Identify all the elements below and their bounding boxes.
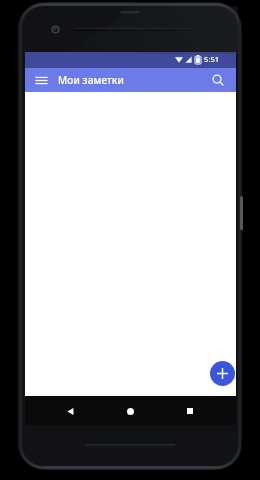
button[interactable]: Add note (210, 361, 235, 386)
button[interactable]: Search (208, 70, 228, 90)
button[interactable]: Home (122, 403, 138, 419)
button[interactable]: Back (62, 403, 78, 419)
button[interactable]: Recent apps (182, 403, 198, 419)
staticText: 5:51 (204, 54, 219, 64)
staticText: Мои заметки (58, 73, 124, 87)
button[interactable]: Open navigation drawer (31, 70, 51, 90)
